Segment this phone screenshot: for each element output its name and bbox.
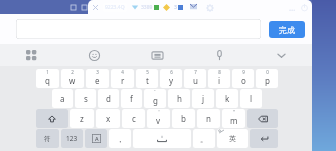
staticText: 2 [71,69,74,75]
staticText: 8 [218,69,221,75]
staticText: " [233,109,235,115]
button[interactable]: Space [133,129,191,148]
button[interactable]: s [75,89,96,108]
staticText: z [80,113,84,124]
button[interactable]: u [184,69,206,88]
staticText: 英 [229,134,236,143]
button[interactable]: Network [129,1,141,13]
button[interactable]: close [90,2,101,13]
staticText: e [95,75,100,86]
staticText: u [193,75,198,86]
button[interactable]: k [216,89,238,108]
staticText: g [153,95,158,106]
button[interactable]: Enter [250,129,278,148]
button[interactable]: r [111,69,134,88]
staticText: 3 [96,69,99,75]
button[interactable]: 9223.4Q [105,3,125,12]
button[interactable]: Power [298,1,310,13]
button[interactable]: y [160,69,182,88]
button[interactable]: maximize [79,2,90,13]
staticText: h [177,93,182,104]
staticText: j [202,93,205,104]
staticText: x [106,113,111,124]
button[interactable]: Switch language [217,129,248,148]
button[interactable]: Apps [0,44,63,66]
staticText: … [289,2,296,13]
staticText: c [132,113,136,124]
button[interactable]: i [208,69,230,88]
button[interactable]: n [197,109,220,128]
button[interactable] [16,19,261,39]
staticText: 9223.4Q [105,4,125,11]
button[interactable]: 123 [61,129,83,148]
button[interactable]: e [86,69,109,88]
staticText: m [230,115,238,126]
button[interactable]: b [172,109,195,128]
button[interactable]: c [122,109,145,128]
button[interactable]: m [222,109,245,128]
button[interactable]: 完成 [269,21,305,38]
button[interactable]: f [121,89,142,108]
button[interactable]: Emoji [63,44,126,66]
staticText: d [106,93,111,104]
staticText: i [218,75,221,86]
staticText: 1 [46,69,49,75]
button[interactable]: restore [68,2,79,13]
staticText: k [225,93,230,104]
button[interactable]: z [70,109,94,128]
staticText: b [181,113,186,124]
staticText: A [95,135,99,142]
button[interactable]: d [98,89,119,108]
button[interactable]: x [96,109,120,128]
staticText: y [169,75,174,86]
button[interactable]: a [52,89,73,108]
staticText: 7 [194,69,197,75]
button[interactable]: Settings [204,2,215,13]
staticText: 4 [121,69,124,75]
button[interactable]: Voice input [188,44,250,66]
staticText: 符 [44,135,51,143]
staticText: 6 [170,69,173,75]
button[interactable]: ， [109,129,131,148]
button[interactable]: q [36,69,59,88]
staticText: 3 [174,4,177,11]
staticText: q [45,75,50,86]
staticText: l [250,93,253,104]
staticText: ， [116,134,124,144]
button[interactable]: p [256,69,278,88]
button[interactable]: Input mode [85,129,107,148]
staticText: 5 [146,69,149,75]
staticText: s [84,93,88,104]
button[interactable]: g [144,89,166,108]
button[interactable]: w [61,69,84,88]
staticText: a [60,93,65,104]
button[interactable]: Backspace [247,109,278,128]
staticText: p [265,75,270,86]
staticText: r [121,75,125,86]
staticText: v [156,115,161,126]
staticText: 123 [66,134,78,143]
button[interactable]: t [136,69,158,88]
staticText: n [206,113,211,124]
staticText: ' [158,109,160,115]
button[interactable]: v [147,109,170,128]
staticText: ` [154,89,156,95]
button[interactable]: Mail [188,2,198,12]
button[interactable]: Shift [36,109,68,128]
staticText: t [146,75,149,86]
button[interactable]: h [168,89,190,108]
staticText: 。 [200,134,208,144]
staticText: 9 [242,69,245,75]
button[interactable]: o [232,69,254,88]
button[interactable]: j [192,89,214,108]
staticText: 完成 [279,25,295,35]
button[interactable]: More [287,2,298,13]
staticText: w [69,75,76,86]
button[interactable]: 。 [193,129,215,148]
button[interactable]: 符 [36,129,59,148]
staticText: f [130,93,133,104]
button[interactable]: Collapse [250,44,312,66]
button[interactable]: Keyboard [126,44,188,66]
staticText: 3389 [141,4,153,11]
button[interactable]: l [240,89,262,108]
